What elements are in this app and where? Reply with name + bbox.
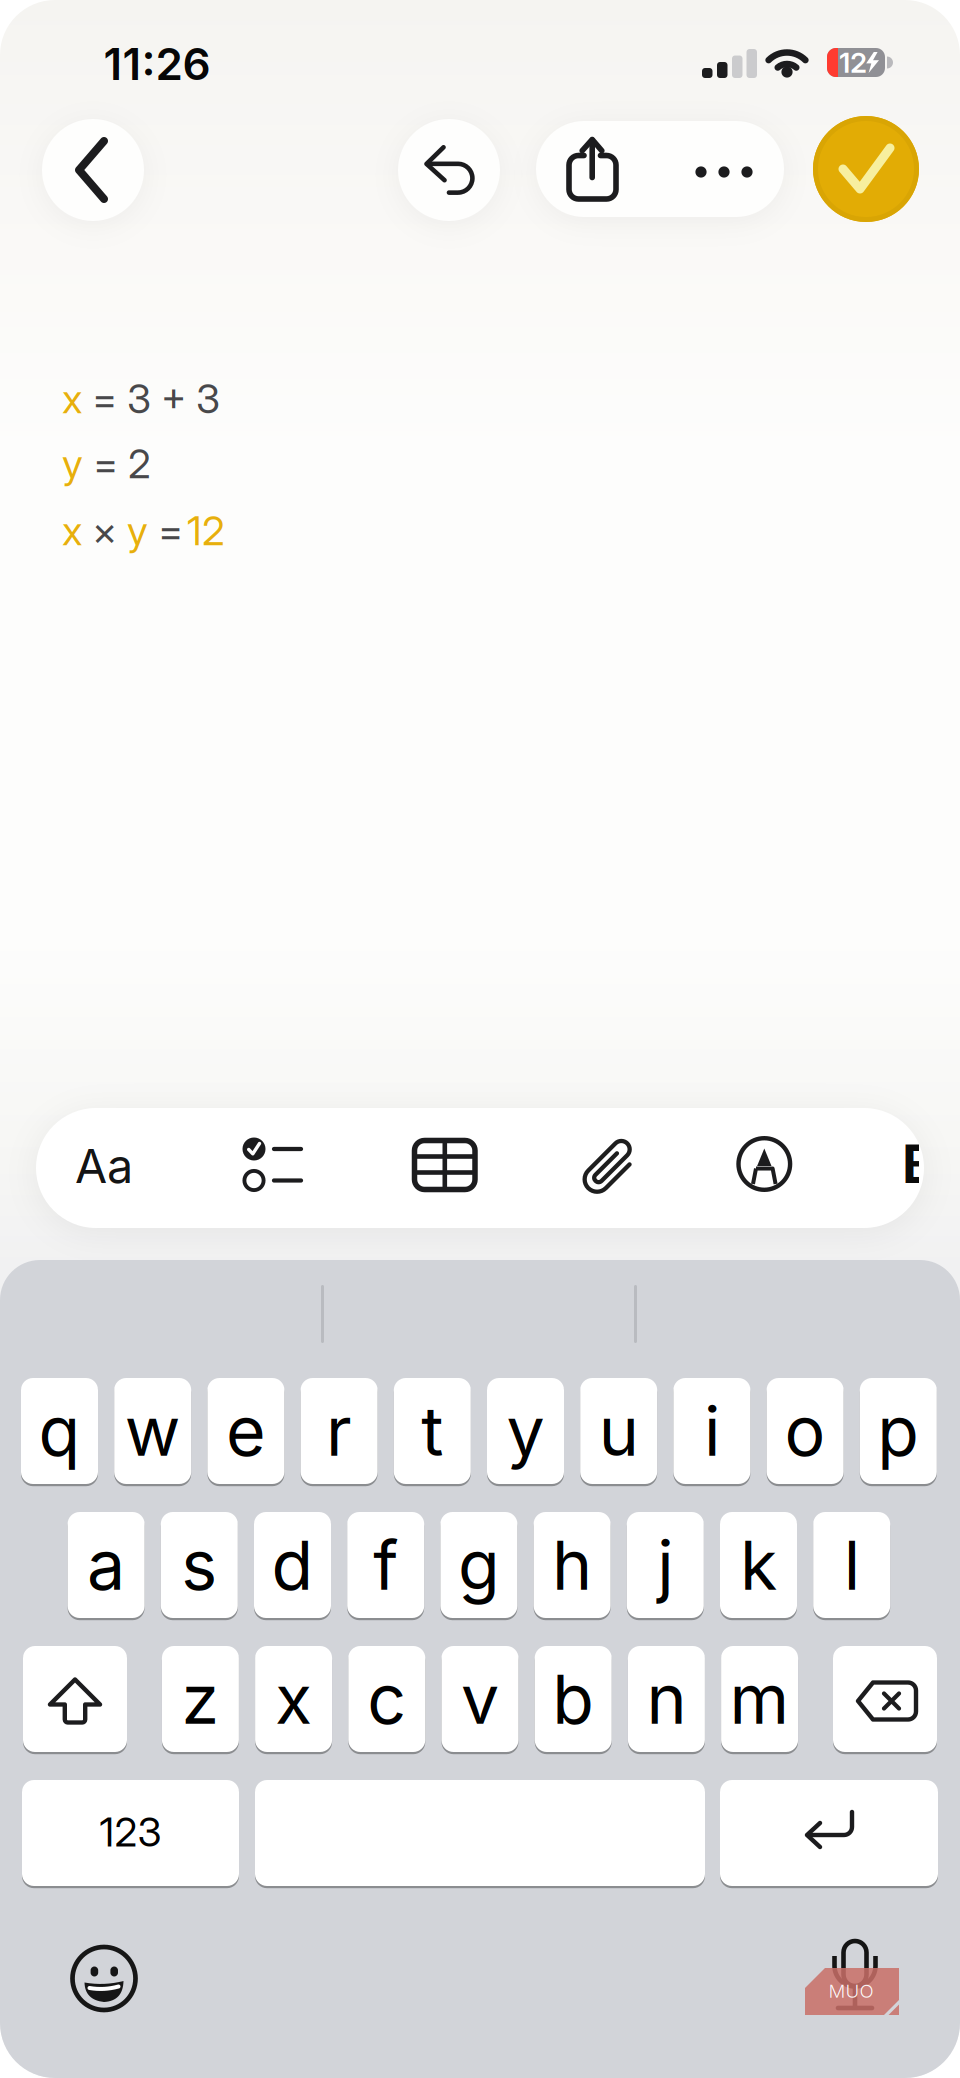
staticText: h: [552, 1525, 592, 1605]
staticText: k: [740, 1525, 777, 1605]
staticText: y: [127, 507, 148, 554]
staticText: y: [506, 1391, 544, 1471]
staticText: z: [181, 1659, 219, 1739]
staticText: = 2: [83, 440, 151, 487]
staticText: ×: [82, 507, 127, 554]
staticText: g: [458, 1525, 500, 1605]
staticText: a: [87, 1525, 125, 1605]
staticText: 11:26: [103, 38, 210, 90]
staticText: l: [844, 1525, 860, 1605]
staticText: u: [599, 1391, 639, 1471]
staticText: 12: [187, 507, 225, 554]
staticText: n: [646, 1659, 686, 1739]
staticText: e: [226, 1391, 266, 1471]
staticText: MUO: [828, 1980, 873, 2002]
staticText: s: [181, 1525, 217, 1605]
staticText: c: [367, 1659, 406, 1739]
staticText: B: [902, 1132, 937, 1195]
staticText: r: [326, 1391, 352, 1471]
staticText: y: [62, 440, 83, 487]
staticText: o: [785, 1391, 826, 1471]
staticText: j: [657, 1525, 673, 1605]
staticText: 123: [99, 1808, 161, 1856]
staticText: x: [275, 1659, 312, 1739]
staticText: =: [148, 507, 183, 554]
staticText: x: [62, 507, 82, 554]
staticText: d: [271, 1525, 313, 1605]
staticText: v: [461, 1659, 499, 1739]
staticText: f: [373, 1525, 398, 1605]
staticText: x: [62, 375, 82, 422]
staticText: q: [38, 1391, 80, 1471]
staticText: p: [877, 1391, 919, 1471]
staticText: t: [421, 1391, 443, 1471]
staticText: b: [552, 1659, 594, 1739]
staticText: i: [704, 1391, 720, 1471]
staticText: = 3 + 3: [82, 375, 220, 422]
staticText: m: [730, 1659, 790, 1739]
staticText: Aa: [75, 1138, 133, 1194]
staticText: 12: [839, 46, 867, 79]
staticText: w: [125, 1391, 181, 1471]
